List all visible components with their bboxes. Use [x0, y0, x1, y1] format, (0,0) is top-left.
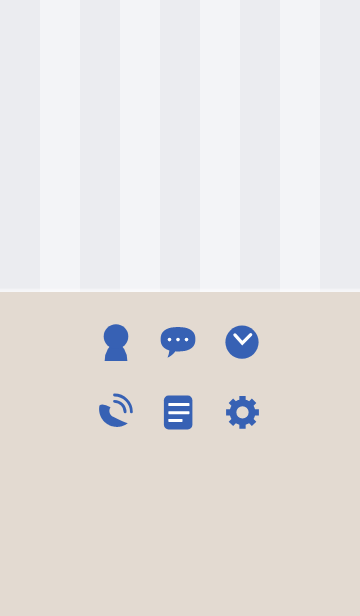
button[interactable]: Call: [94, 390, 138, 434]
button[interactable]: Documents: [156, 390, 200, 434]
button[interactable]: Messages: [156, 320, 200, 364]
button[interactable]: Settings: [220, 390, 264, 434]
button[interactable]: Done: [220, 320, 264, 364]
button[interactable]: Profile: [94, 320, 138, 364]
